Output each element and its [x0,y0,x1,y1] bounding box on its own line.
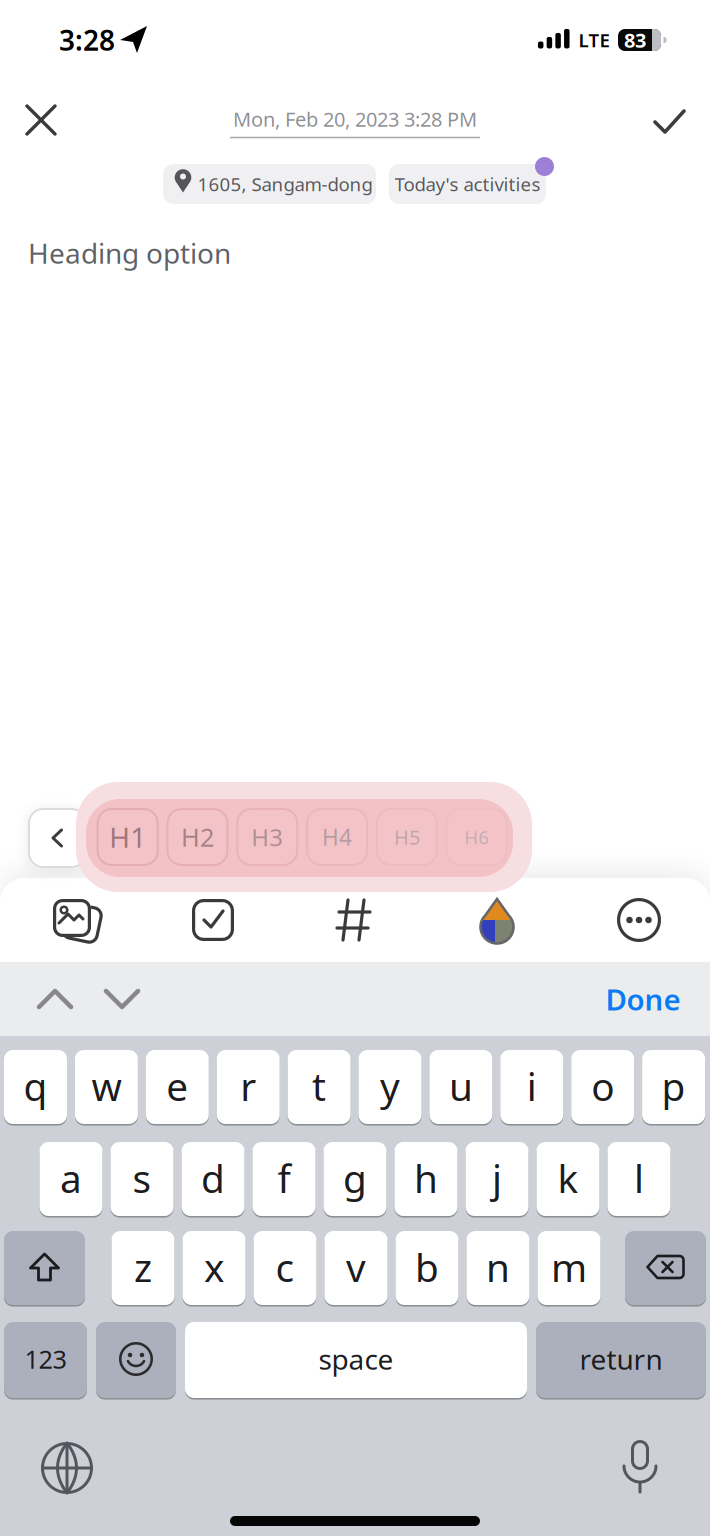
staticText: b [415,1241,439,1293]
staticText: q [23,1060,47,1112]
staticText: v [346,1241,366,1293]
staticText: s [132,1152,151,1204]
staticText: a [60,1152,82,1204]
staticText: return [579,1340,662,1378]
staticText: o [591,1060,614,1112]
staticText: 1605, Sangam-dong [197,172,372,196]
staticText: H5 [394,824,420,850]
staticText: Today's activities [394,172,540,196]
staticText: 123 [24,1342,66,1376]
staticText: p [662,1060,686,1112]
staticText: c [275,1241,294,1293]
staticText: r [240,1060,256,1112]
staticText: m [551,1241,587,1293]
staticText: k [557,1152,578,1204]
staticText: H1 [109,818,146,856]
staticText: x [204,1241,224,1293]
staticText: space [318,1340,393,1378]
staticText: z [134,1241,152,1293]
staticText: H6 [464,825,489,849]
staticText: g [343,1152,367,1204]
staticText: H4 [322,822,352,852]
staticText: t [312,1060,326,1112]
staticText: 83 [624,27,646,53]
staticText: Done [605,979,680,1018]
staticText: i [527,1060,537,1112]
staticText: Mon, Feb 20, 2023 3:28 PM [233,106,477,132]
staticText: LTE [578,28,609,52]
staticText: H2 [181,820,214,854]
staticText: j [492,1152,502,1204]
staticText: d [201,1152,225,1204]
staticText: y [380,1060,400,1112]
staticText: 3:28 [59,21,115,59]
staticText: n [486,1241,510,1293]
staticText: w [91,1060,121,1112]
staticText: f [277,1152,290,1204]
staticText: u [449,1060,473,1112]
staticText: e [166,1060,188,1112]
staticText: h [414,1152,438,1204]
staticText: l [634,1152,644,1204]
staticText: H3 [251,821,283,853]
staticText: Heading option [28,234,231,272]
